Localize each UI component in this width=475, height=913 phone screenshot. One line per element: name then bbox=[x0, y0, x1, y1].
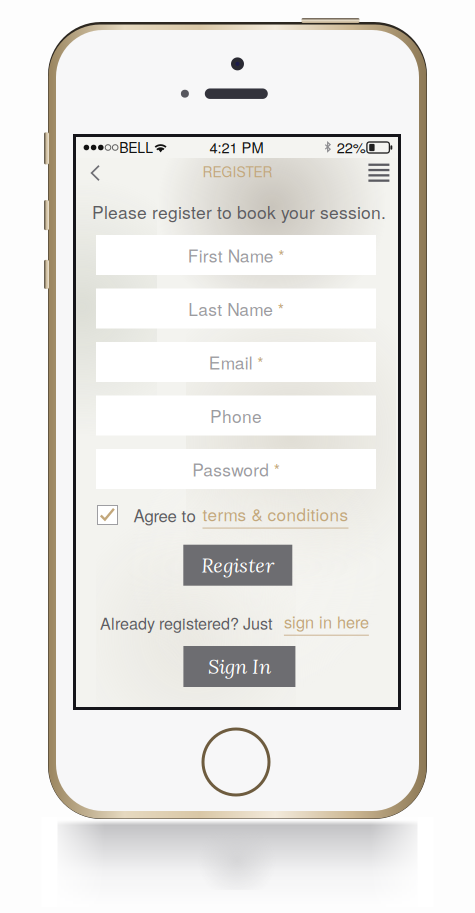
button[interactable]: Register bbox=[183, 545, 292, 586]
staticText: Register bbox=[201, 552, 274, 578]
button[interactable]: Agree to bbox=[97, 501, 348, 528]
staticText: 4:21 PM bbox=[210, 136, 264, 157]
staticText: Phone bbox=[210, 403, 262, 428]
button[interactable]: Password bbox=[96, 449, 376, 489]
staticText: Agree to bbox=[133, 503, 195, 527]
staticText: * bbox=[274, 457, 280, 480]
button[interactable]: Menu bbox=[361, 156, 397, 190]
staticText: * bbox=[257, 350, 263, 373]
button[interactable]: First Name bbox=[96, 235, 376, 275]
staticText: Already registered? Just bbox=[100, 611, 272, 634]
staticText: * bbox=[278, 297, 284, 320]
button[interactable]: Sign In bbox=[183, 646, 295, 687]
button[interactable]: Last Name bbox=[96, 288, 376, 328]
staticText: Email bbox=[209, 350, 253, 374]
button[interactable]: Phone bbox=[96, 395, 376, 435]
button[interactable]: sign in here bbox=[272, 610, 369, 636]
staticText: Sign In bbox=[208, 654, 271, 679]
staticText: sign in here bbox=[284, 610, 369, 633]
staticText: 22% bbox=[337, 136, 366, 157]
staticText: Password bbox=[192, 457, 269, 481]
staticText: REGISTER bbox=[202, 161, 272, 181]
button[interactable]: Email bbox=[96, 342, 376, 382]
staticText: terms & conditions bbox=[202, 501, 348, 526]
staticText: Last Name bbox=[188, 296, 273, 321]
staticText: BELL bbox=[119, 137, 153, 157]
staticText: First Name bbox=[188, 243, 274, 267]
staticText: * bbox=[278, 243, 284, 266]
button[interactable]: Back bbox=[77, 156, 113, 190]
staticText: Please register to book your session. bbox=[92, 199, 386, 224]
